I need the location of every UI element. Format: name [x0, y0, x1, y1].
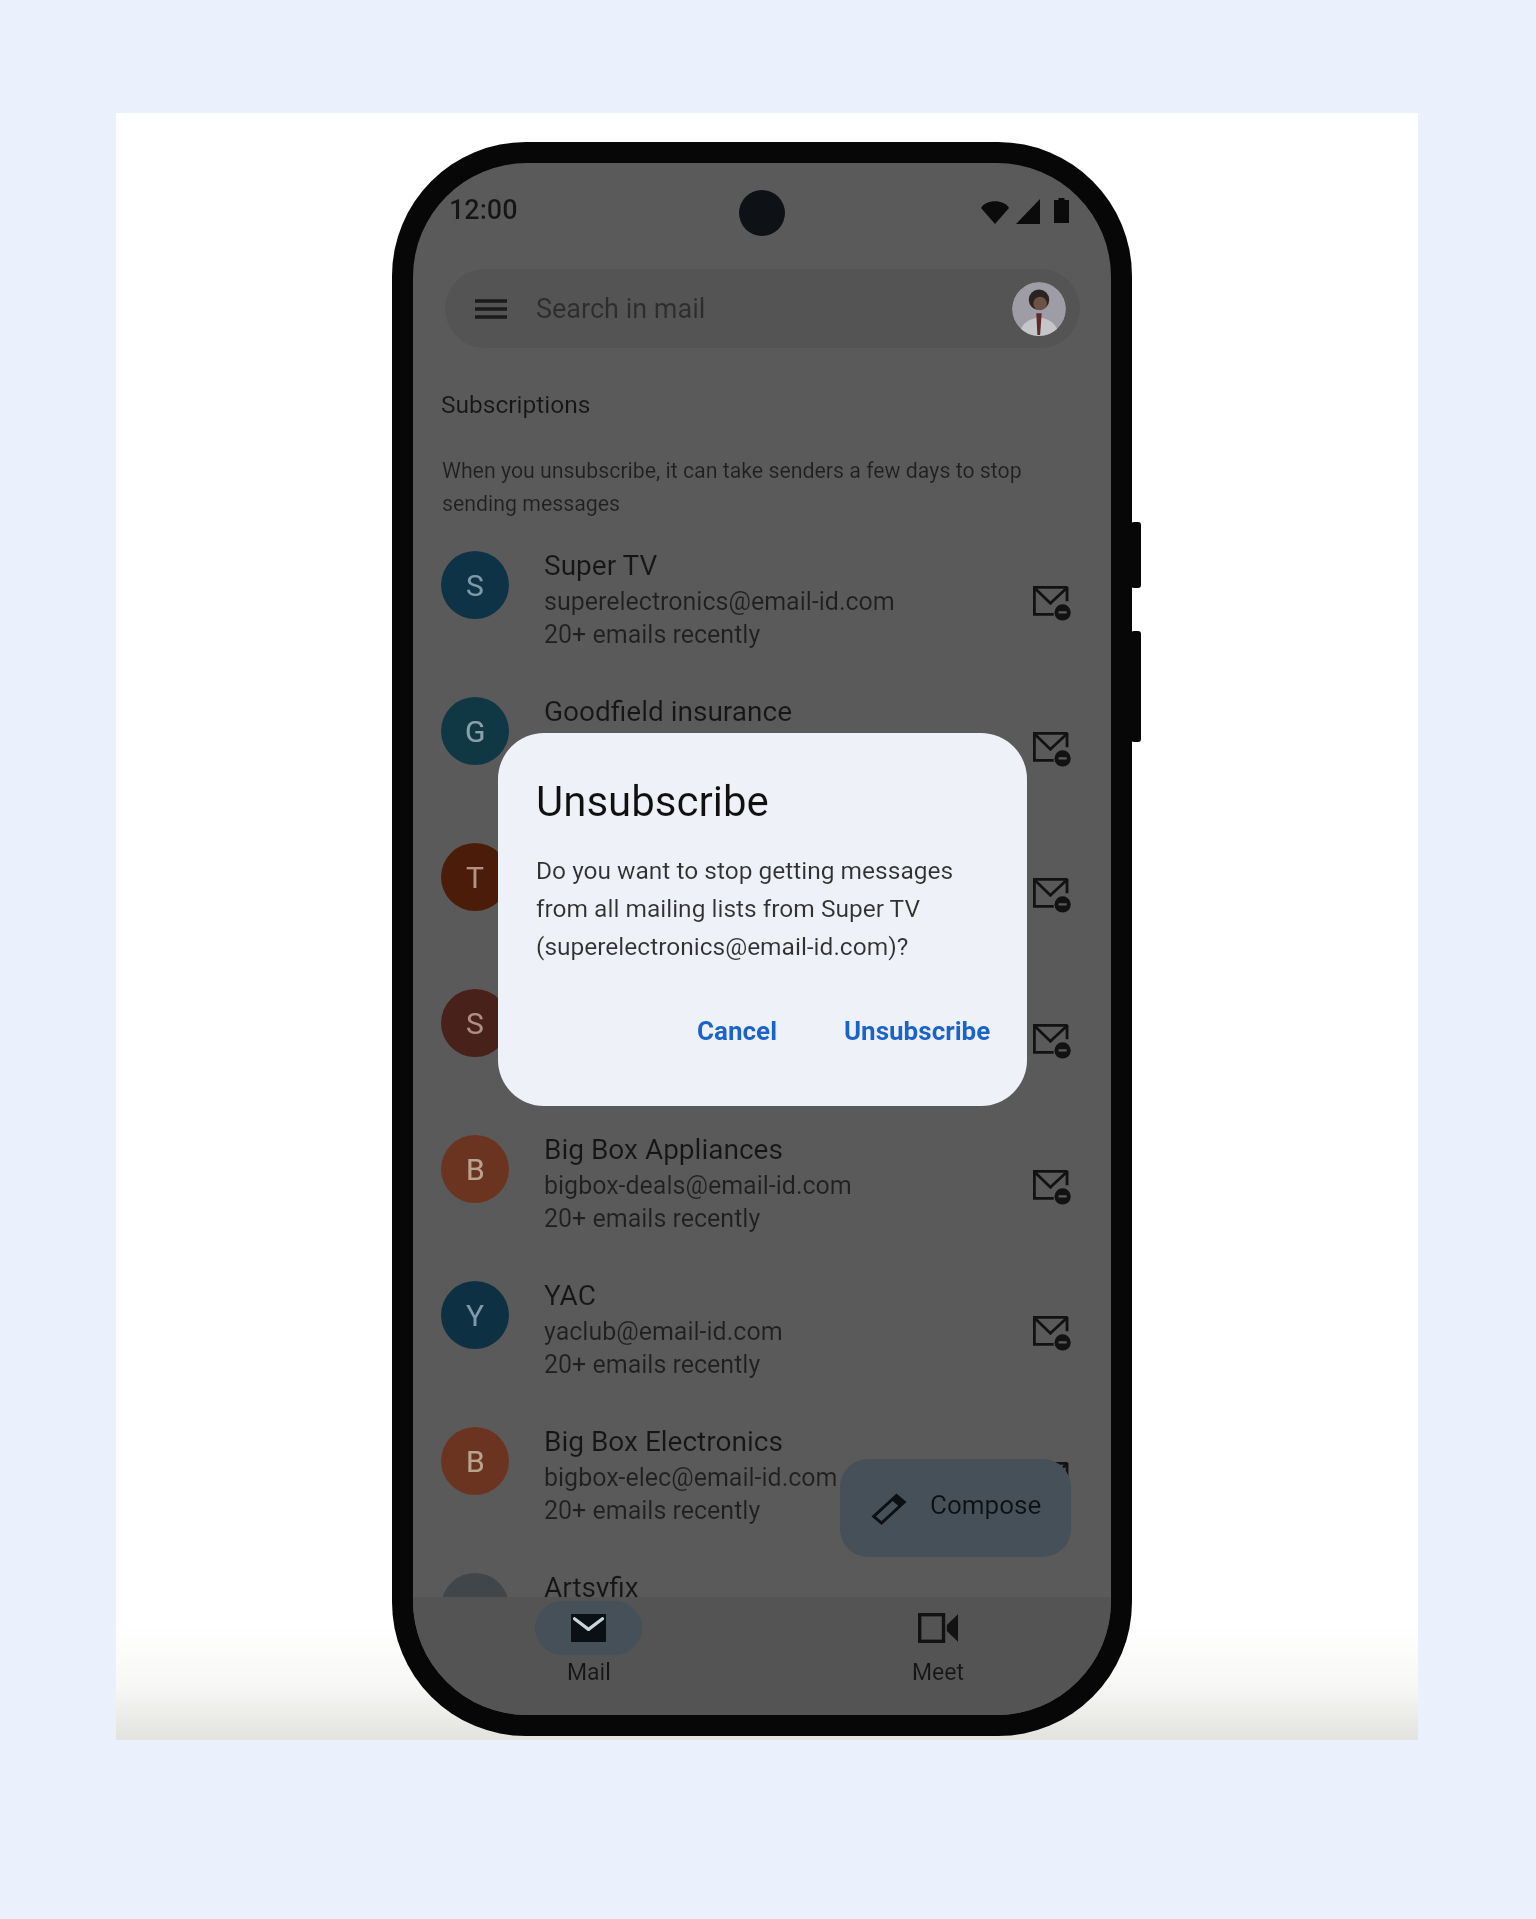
button[interactable]: Unsubscribe — [1008, 658, 1111, 804]
staticText: Big Box Appliances — [544, 1133, 783, 1166]
staticText: Mail — [567, 1659, 611, 1686]
button[interactable]: Unsubscribe — [1008, 512, 1111, 658]
staticText: B — [466, 1152, 485, 1187]
staticText: bigbox-elec@email-id.com — [544, 1463, 838, 1492]
staticText: S — [466, 568, 484, 603]
staticText: superelectronics@email-id.com — [544, 587, 895, 616]
button[interactable]: Unsubscribe — [828, 1008, 1007, 1054]
other: Open navigation menu — [471, 289, 511, 329]
staticText: Super TV — [544, 549, 658, 582]
button[interactable]: Unsubscribe — [1008, 1242, 1111, 1388]
staticText: thedaily@email-id.com — [544, 879, 798, 908]
staticText: artsyfix@email-id.com — [544, 1609, 793, 1638]
button[interactable]: S — [413, 512, 1111, 658]
staticText: Goodfield insurance — [544, 695, 793, 728]
staticText: Big Box Electronics — [544, 1425, 783, 1458]
staticText: YAC — [544, 1279, 596, 1312]
staticText: 20+ emails recently — [544, 1204, 761, 1233]
staticText: Unsubscribe — [844, 1016, 991, 1046]
staticText: A — [465, 1590, 485, 1625]
staticText: G — [465, 714, 486, 749]
staticText: shopzone@email-id.com — [544, 1025, 819, 1054]
button[interactable]: Y — [413, 1242, 1111, 1388]
staticText: Search in mail — [536, 293, 706, 325]
staticText: When you unsubscribe, it can take sender… — [442, 458, 1042, 516]
staticText: Compose — [930, 1490, 1042, 1520]
button[interactable]: Unsubscribe — [1008, 1534, 1111, 1680]
button[interactable]: A — [413, 1534, 1111, 1680]
staticText: T — [466, 860, 484, 895]
button[interactable]: B — [413, 1388, 1111, 1534]
button[interactable]: Mail — [535, 1601, 642, 1686]
staticText: 12:00 — [449, 194, 518, 226]
staticText: Y — [466, 1298, 485, 1333]
button[interactable]: T — [413, 804, 1111, 950]
staticText: Do you want to stop getting messages fro… — [536, 856, 997, 961]
staticText: 20+ emails recently — [544, 1350, 761, 1379]
staticText: 20+ emails recently — [544, 620, 761, 649]
staticText: Cancel — [697, 1016, 778, 1046]
button[interactable]: Unsubscribe — [1008, 804, 1111, 950]
staticText: S — [466, 1006, 484, 1041]
button[interactable]: Unsubscribe — [1008, 950, 1111, 1096]
button[interactable]: Open navigation menu — [445, 269, 1080, 348]
staticText: 20+ emails recently — [544, 766, 761, 795]
staticText: Subscriptions — [441, 390, 591, 419]
button[interactable]: Cancel — [681, 1008, 794, 1054]
staticText: Unsubscribe — [536, 777, 769, 826]
button[interactable]: Compose — [840, 1459, 1071, 1557]
staticText: B — [466, 1444, 485, 1479]
button[interactable]: Account — [1012, 282, 1066, 336]
staticText: yaclub@email-id.com — [544, 1317, 783, 1346]
button[interactable]: Unsubscribe — [1008, 1096, 1111, 1242]
button[interactable]: S — [413, 950, 1111, 1096]
staticText: Artsyfix — [544, 1571, 639, 1604]
button[interactable]: Unsubscribe — [1008, 1388, 1111, 1534]
staticText: 20+ emails recently — [544, 1642, 761, 1671]
button[interactable]: G — [413, 658, 1111, 804]
staticText: Meet — [912, 1659, 964, 1686]
button[interactable]: B — [413, 1096, 1111, 1242]
staticText: 20+ emails recently — [544, 1496, 761, 1525]
staticText: 20+ emails recently — [544, 912, 761, 941]
staticText: The Daily News — [544, 841, 736, 874]
button[interactable]: Meet — [884, 1601, 991, 1686]
staticText: bigbox-deals@email-id.com — [544, 1171, 852, 1200]
